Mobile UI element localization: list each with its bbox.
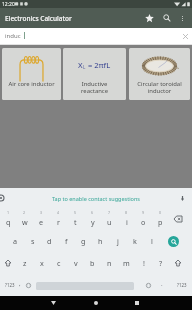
staticText: 8 [125,210,128,215]
button[interactable]: Search [159,10,175,26]
button[interactable]: Air core inductor [2,48,61,100]
button[interactable]: 9 [135,208,152,230]
button[interactable]: Emoji picker [143,274,153,296]
button[interactable]: x [33,252,50,274]
button[interactable]: 3 [33,208,50,230]
button[interactable]: Clear search [178,29,192,43]
button[interactable]: Download [176,192,188,204]
button[interactable]: Search [168,236,179,247]
button[interactable]: b [84,252,101,274]
staticText: L [83,64,86,70]
staticText: k [133,236,137,246]
button[interactable]: ?123 [1,274,19,296]
button[interactable]: g [75,230,92,252]
staticText: p [158,217,163,227]
staticText: w [22,217,28,227]
staticText: y [91,217,95,227]
staticText: = 2πfL [86,60,111,70]
button[interactable]: a [7,230,24,252]
staticText: 3 [40,210,43,215]
button[interactable]: j [109,230,126,252]
staticText: c [57,258,61,268]
button[interactable]: 8 [118,208,135,230]
button[interactable]: z [16,252,33,274]
staticText: d [47,236,52,246]
staticText: Circular toroidal inductor [129,80,190,95]
staticText: e [39,217,44,227]
staticText: j [117,236,119,246]
staticText: i [126,217,128,227]
button[interactable]: 7 [101,208,118,230]
staticText: 2 [23,210,26,215]
staticText: Inductive reactance [63,80,126,95]
button[interactable]: 5 [67,208,84,230]
button[interactable]: Shift [0,252,16,274]
staticText: Tap to enable contact suggestions [52,195,140,202]
staticText: t [74,217,77,227]
button[interactable]: h [92,230,109,252]
button[interactable]: X [63,48,126,100]
button[interactable]: s [24,230,41,252]
button[interactable]: Favorite [141,10,157,26]
staticText: ! [143,258,145,268]
staticText: s [31,236,35,246]
staticText: u [107,217,112,227]
button[interactable]: Circular toroidal inductor [129,48,190,100]
staticText: o [141,217,146,227]
staticText: Air core inductor [2,80,61,88]
staticText: ?123 [5,282,15,288]
button[interactable]: l [143,230,160,252]
staticText: ?123 [177,282,187,288]
staticText: 4 [57,210,60,215]
staticText: m [123,258,130,268]
button[interactable]: Emoji [23,274,33,296]
button[interactable]: More options [174,10,190,26]
staticText: a [13,236,18,246]
staticText: x [40,258,44,268]
button[interactable]: c [50,252,67,274]
staticText: 0 [159,210,162,215]
button[interactable]: Recent apps [128,296,146,310]
button[interactable]: Back [44,296,62,310]
button[interactable]: ?123 [173,274,191,296]
staticText: q [6,217,11,227]
staticText: 12:20 [2,1,15,8]
staticText: v [74,258,78,268]
button[interactable]: , [15,274,25,296]
staticText: l [151,236,153,246]
button[interactable]: Voice input [0,192,7,204]
button[interactable]: 0 [152,208,169,230]
staticText: induc [5,32,21,40]
staticText: n [107,258,112,268]
button[interactable]: ? [152,252,169,274]
button[interactable]: d [41,230,58,252]
button[interactable]: v [67,252,84,274]
staticText: 7 [108,210,111,215]
staticText: Electronics Calculator [5,14,72,23]
staticText: f [65,236,68,246]
staticText: ? [159,258,163,268]
staticText: z [23,258,27,268]
button[interactable]: k [126,230,143,252]
button[interactable]: ! [135,252,152,274]
button[interactable]: 1 [0,208,16,230]
button[interactable]: m [118,252,135,274]
button[interactable]: . [156,274,168,296]
button[interactable]: 2 [16,208,33,230]
staticText: g [81,236,86,246]
staticText: b [90,258,95,268]
button[interactable]: Home [87,296,105,310]
button[interactable]: n [101,252,118,274]
button[interactable]: Backspace [169,208,186,230]
button[interactable]: 6 [84,208,101,230]
staticText: , [19,280,21,288]
button[interactable]: 4 [50,208,67,230]
staticText: . [161,280,163,288]
button[interactable]: Emoji [169,252,186,274]
button[interactable]: f [58,230,75,252]
staticText: 1 [7,210,10,215]
staticText: h [98,236,103,246]
staticText: r [57,217,60,227]
staticText: 5 [74,210,77,215]
